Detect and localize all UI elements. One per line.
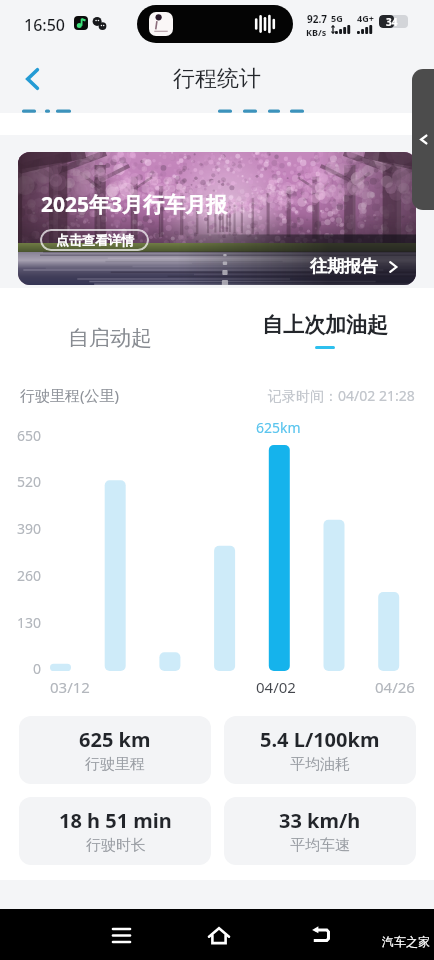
staticText: 390 — [0, 519, 41, 538]
staticText: 平均车速 — [290, 836, 350, 855]
button[interactable]: 5.4 L/100km — [224, 716, 416, 784]
button[interactable]: 625 km — [19, 716, 211, 784]
button[interactable]: 2025年3月行车月报 — [18, 152, 416, 285]
staticText: 4G+ — [357, 12, 374, 24]
button[interactable]: 点击查看详情 — [40, 229, 149, 251]
staticText: KB/s — [306, 26, 327, 38]
button[interactable]: 往期报告 — [310, 256, 400, 277]
button[interactable]: 自上次加油起 — [255, 312, 395, 364]
button[interactable]: 18 h 51 min — [19, 797, 211, 865]
staticText: 04/02 — [256, 677, 296, 697]
staticText: 520 — [0, 472, 41, 491]
button[interactable]: Home — [199, 915, 239, 955]
staticText: 自上次加油起 — [262, 312, 388, 338]
staticText: 18 h 51 min — [59, 807, 172, 834]
staticText: 行程统计 — [173, 65, 261, 93]
staticText: 625km — [256, 418, 301, 437]
staticText: 2025年3月行车月报 — [41, 190, 228, 219]
button[interactable]: 33 km/h — [224, 797, 416, 865]
button[interactable]: Recent apps — [101, 915, 141, 955]
staticText: 点击查看详情 — [56, 232, 134, 248]
staticText: 汽车之家 — [382, 934, 430, 949]
staticText: 33 km/h — [279, 807, 361, 834]
button[interactable]: Back — [13, 59, 53, 99]
staticText: 行驶里程(公里) — [20, 385, 120, 405]
staticText: 625 km — [79, 726, 151, 753]
button[interactable]: Back — [300, 915, 340, 955]
staticText: 5.4 L/100km — [260, 726, 380, 753]
staticText: 260 — [0, 566, 41, 585]
staticText: 行驶里程 — [85, 755, 145, 774]
staticText: 记录时间：04/02 21:28 — [268, 386, 415, 405]
staticText: 04/26 — [375, 677, 415, 697]
staticText: 行驶时长 — [86, 836, 146, 855]
button[interactable]: Expand panel — [412, 69, 434, 210]
staticText: 自启动起 — [68, 325, 152, 351]
staticText: 0 — [0, 659, 41, 678]
staticText: 16:50 — [24, 14, 65, 36]
staticText: 650 — [0, 426, 41, 445]
staticText: 92.7 — [307, 12, 327, 26]
staticText: 130 — [0, 613, 41, 632]
button[interactable]: 自启动起 — [40, 312, 180, 364]
staticText: 34 — [386, 15, 398, 28]
staticText: 03/12 — [50, 677, 90, 697]
staticText: 往期报告 — [310, 256, 378, 277]
staticText: 平均油耗 — [290, 755, 350, 774]
staticText: 5G — [331, 12, 343, 24]
